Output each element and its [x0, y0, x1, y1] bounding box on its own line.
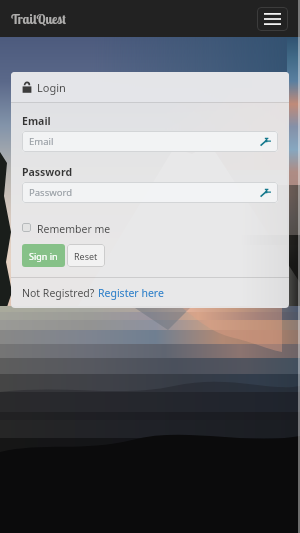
- button[interactable]: Remember me: [22, 222, 111, 233]
- button[interactable]: Reset: [67, 244, 105, 267]
- staticText: Reset: [74, 250, 98, 262]
- staticText: Remember me: [37, 222, 111, 233]
- button[interactable]: Email: [22, 131, 278, 152]
- staticText: Register here: [98, 286, 164, 300]
- staticText: Password: [22, 165, 73, 179]
- button[interactable]: Register here: [98, 286, 164, 300]
- staticText: Not Registred?: [22, 286, 98, 300]
- staticText: Email: [29, 135, 54, 148]
- button[interactable]: Sign in: [22, 244, 65, 267]
- button[interactable]: Open navigation menu: [257, 7, 288, 31]
- button[interactable]: Password: [22, 182, 278, 203]
- staticText: Email: [22, 114, 51, 128]
- staticText: Login: [37, 80, 66, 95]
- staticText: Sign in: [29, 250, 58, 262]
- staticText: Password: [29, 186, 72, 199]
- staticText: TrailQuest: [11, 11, 66, 27]
